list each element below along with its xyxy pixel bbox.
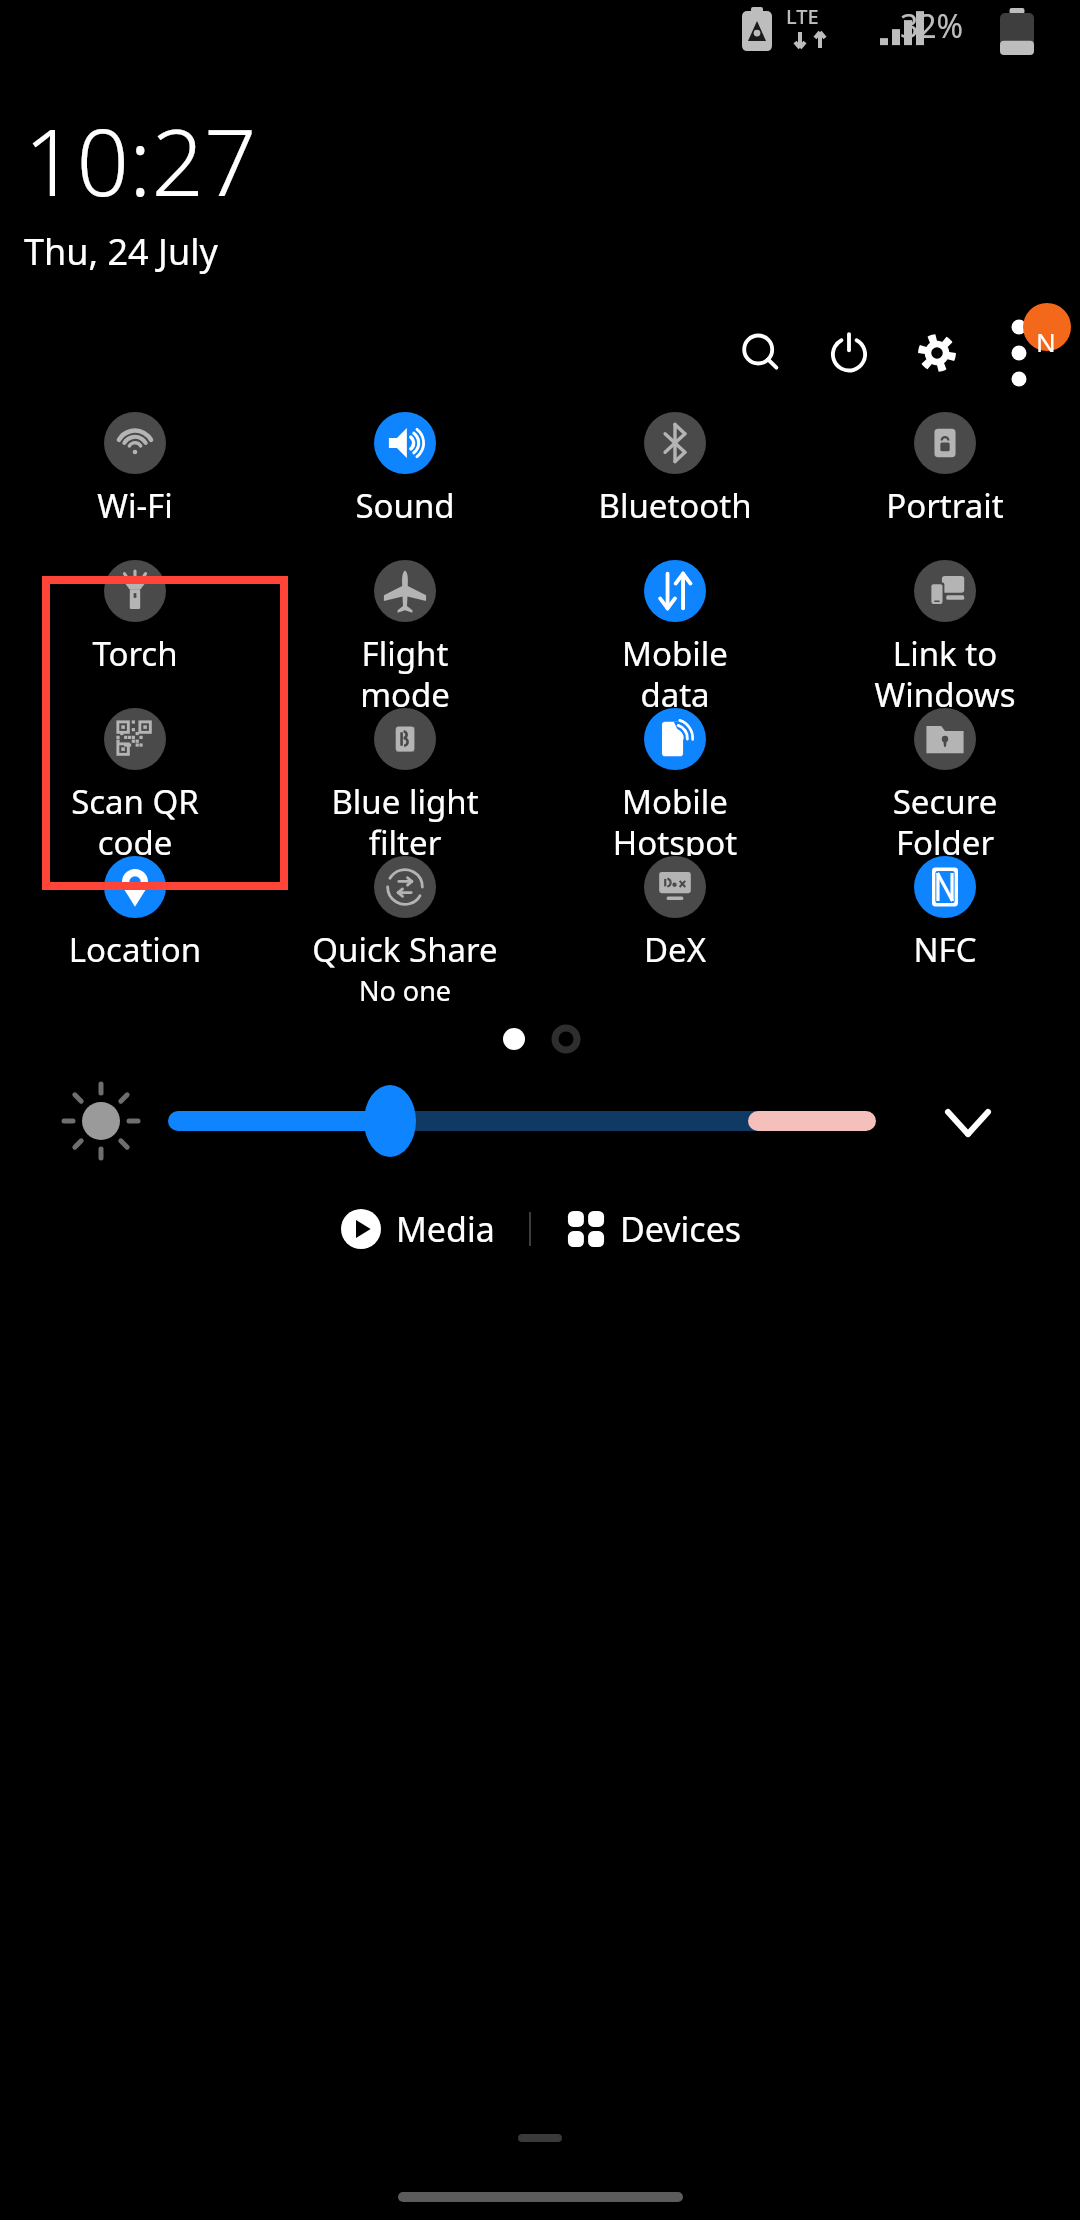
- staticText: Blue light filter: [270, 779, 540, 856]
- staticText: Sound: [270, 483, 540, 528]
- button[interactable]: Devices: [557, 1206, 750, 1252]
- button[interactable]: Scan QR code: [0, 708, 270, 856]
- staticText: LTE: [786, 3, 819, 30]
- button[interactable]: Sound: [270, 412, 540, 560]
- button[interactable]: Blue light filter: [270, 708, 540, 856]
- staticText: Media: [396, 1206, 495, 1252]
- staticText: Secure Folder: [810, 779, 1080, 856]
- button[interactable]: Search: [726, 318, 796, 388]
- staticText: Portrait: [810, 483, 1080, 528]
- staticText: Flight mode: [270, 631, 540, 708]
- staticText: Quick Share: [270, 927, 540, 972]
- staticText: NFC: [810, 927, 1080, 972]
- button[interactable]: Settings: [902, 318, 972, 388]
- button[interactable]: Quick Share: [270, 856, 540, 1004]
- button[interactable]: More options: [990, 318, 1060, 388]
- button[interactable]: Wi-Fi: [0, 412, 270, 560]
- staticText: Wi-Fi: [0, 483, 270, 528]
- button[interactable]: Link to Windows: [810, 560, 1080, 708]
- button[interactable]: Torch: [0, 560, 270, 708]
- staticText: DeX: [540, 927, 810, 972]
- staticText: Thu, 24 July: [24, 227, 218, 276]
- staticText: Link to Windows: [810, 631, 1080, 708]
- staticText: 32%: [900, 4, 964, 48]
- button[interactable]: NFC: [810, 856, 1080, 1004]
- button[interactable]: Portrait: [810, 412, 1080, 560]
- staticText: Mobile Hotspot: [540, 779, 810, 856]
- button[interactable]: Media: [331, 1206, 503, 1252]
- button[interactable]: Brightness: [0, 1078, 1080, 1164]
- staticText: Bluetooth: [540, 483, 810, 528]
- button[interactable]: Secure Folder: [810, 708, 1080, 856]
- staticText: 10:27: [24, 98, 257, 223]
- button[interactable]: Power: [814, 318, 884, 388]
- button[interactable]: DeX: [540, 856, 810, 1004]
- button[interactable]: Mobile data: [540, 560, 810, 708]
- button[interactable]: Bluetooth: [540, 412, 810, 560]
- staticText: No one: [270, 972, 540, 1004]
- button[interactable]: Flight mode: [270, 560, 540, 708]
- staticText: Devices: [620, 1206, 742, 1252]
- staticText: Mobile data: [540, 631, 810, 708]
- staticText: Torch: [0, 631, 270, 676]
- button[interactable]: Location: [0, 856, 270, 1004]
- staticText: N: [1036, 324, 1056, 359]
- staticText: Scan QR code: [0, 779, 270, 856]
- button[interactable]: Mobile Hotspot: [540, 708, 810, 856]
- staticText: Location: [0, 927, 270, 972]
